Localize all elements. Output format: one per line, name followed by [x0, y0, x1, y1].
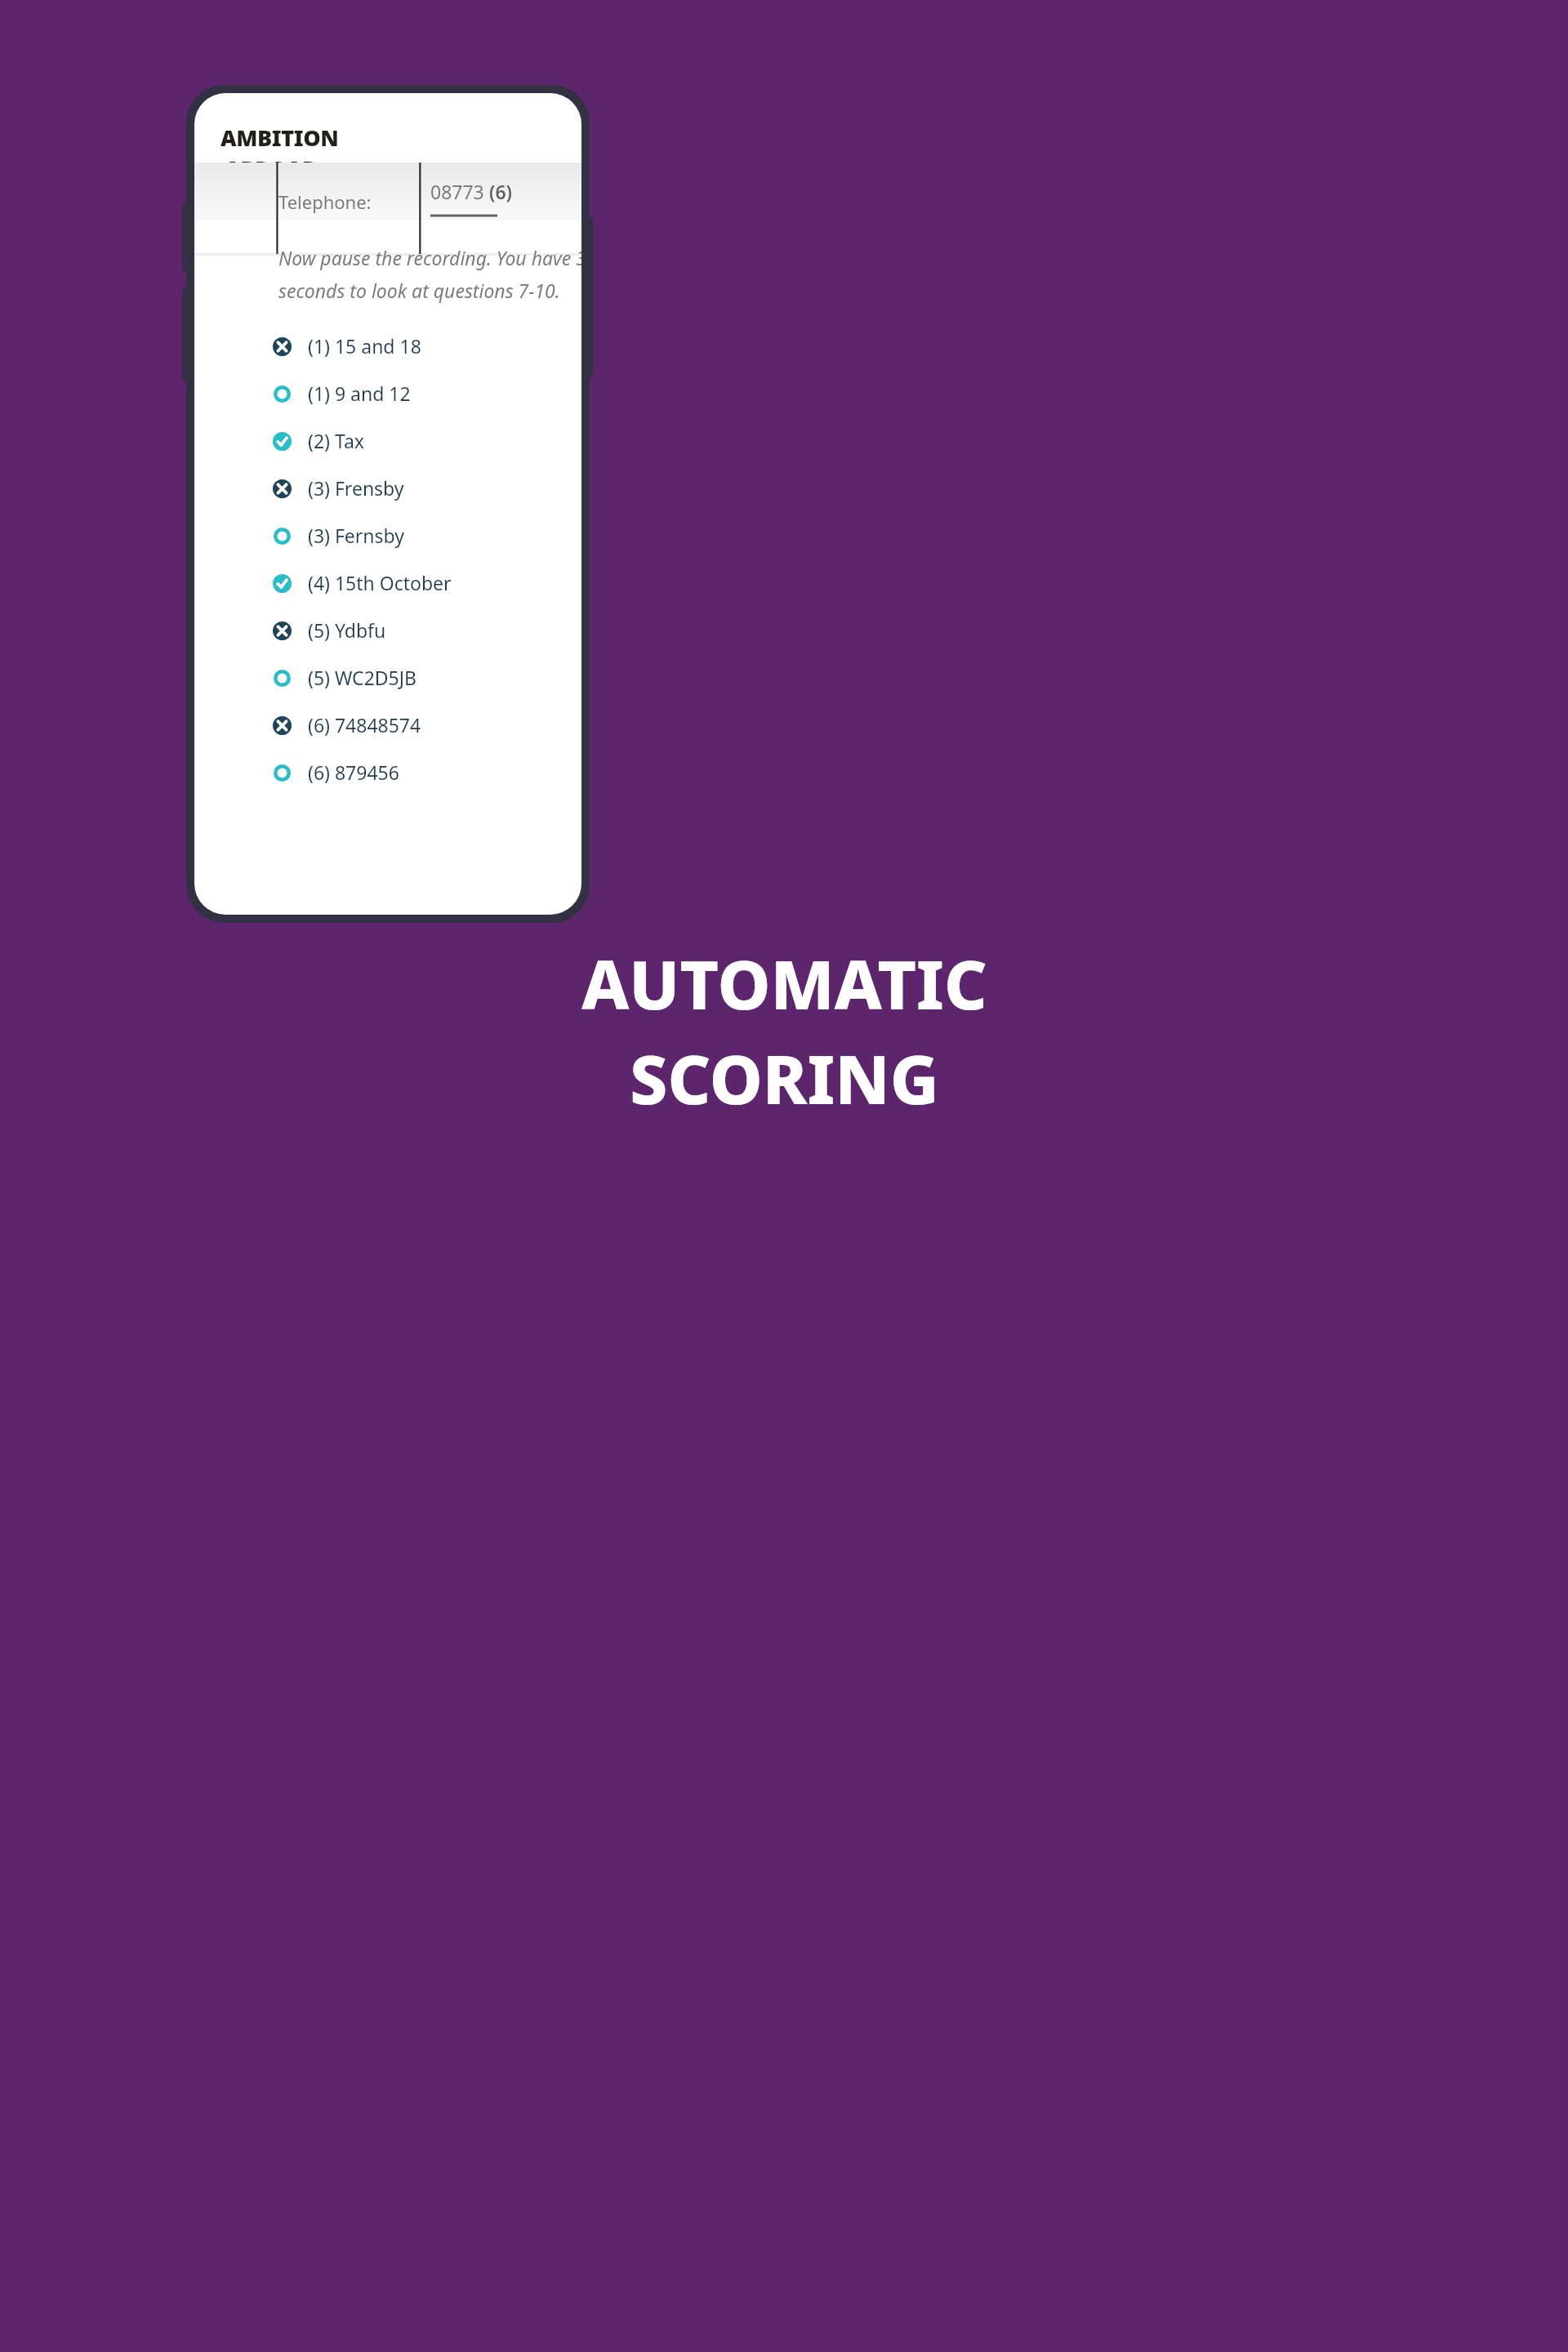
- other: Correct answer: [268, 427, 296, 455]
- other: Correct answer: [268, 569, 296, 597]
- button[interactable]: Incorrect answer: [268, 327, 581, 364]
- button[interactable]: Your answer: [268, 659, 581, 696]
- button[interactable]: Incorrect answer: [268, 706, 581, 743]
- other: Incorrect answer: [268, 711, 296, 739]
- staticText: (3) Fernsby: [308, 523, 404, 548]
- staticText: AMBITION: [220, 122, 339, 153]
- staticText: (3) Frensby: [308, 475, 404, 501]
- button[interactable]: Correct answer: [268, 422, 581, 459]
- button[interactable]: Incorrect answer: [268, 470, 581, 506]
- other: Your answer: [268, 664, 296, 692]
- staticText: SCORING: [630, 1032, 939, 1124]
- button[interactable]: Your answer: [268, 517, 581, 554]
- button[interactable]: Your answer: [268, 375, 581, 412]
- other: Your answer: [268, 759, 296, 786]
- other: Your answer: [268, 380, 296, 408]
- button[interactable]: Correct answer: [268, 564, 581, 601]
- staticText: Telephone:: [278, 189, 372, 214]
- staticText: (5) WC2D5JB: [308, 665, 416, 690]
- staticText: seconds to look at questions 7-10.: [278, 278, 560, 303]
- other: Incorrect answer: [268, 474, 296, 502]
- staticText: (4) 15th October: [308, 570, 452, 595]
- other: Incorrect answer: [268, 617, 296, 644]
- staticText: (6) 879456: [308, 759, 399, 785]
- staticText: Now pause the recording. You have 30: [278, 245, 581, 270]
- staticText: (6) 74848574: [308, 712, 421, 737]
- staticText: 08773: [430, 179, 489, 204]
- staticText: AUTOMATIC: [581, 938, 987, 1029]
- staticText: (6): [489, 179, 513, 204]
- other: Your answer: [268, 522, 296, 550]
- staticText: (5) Ydbfu: [308, 617, 386, 643]
- staticText: (1) 15 and 18: [308, 333, 421, 359]
- staticText: (2) Tax: [308, 428, 364, 453]
- staticText: ABROAD: [225, 154, 318, 184]
- staticText: (1) 9 and 12: [308, 381, 411, 406]
- other: Incorrect answer: [268, 332, 296, 360]
- button[interactable]: Your answer: [268, 754, 581, 791]
- button[interactable]: Incorrect answer: [268, 612, 581, 648]
